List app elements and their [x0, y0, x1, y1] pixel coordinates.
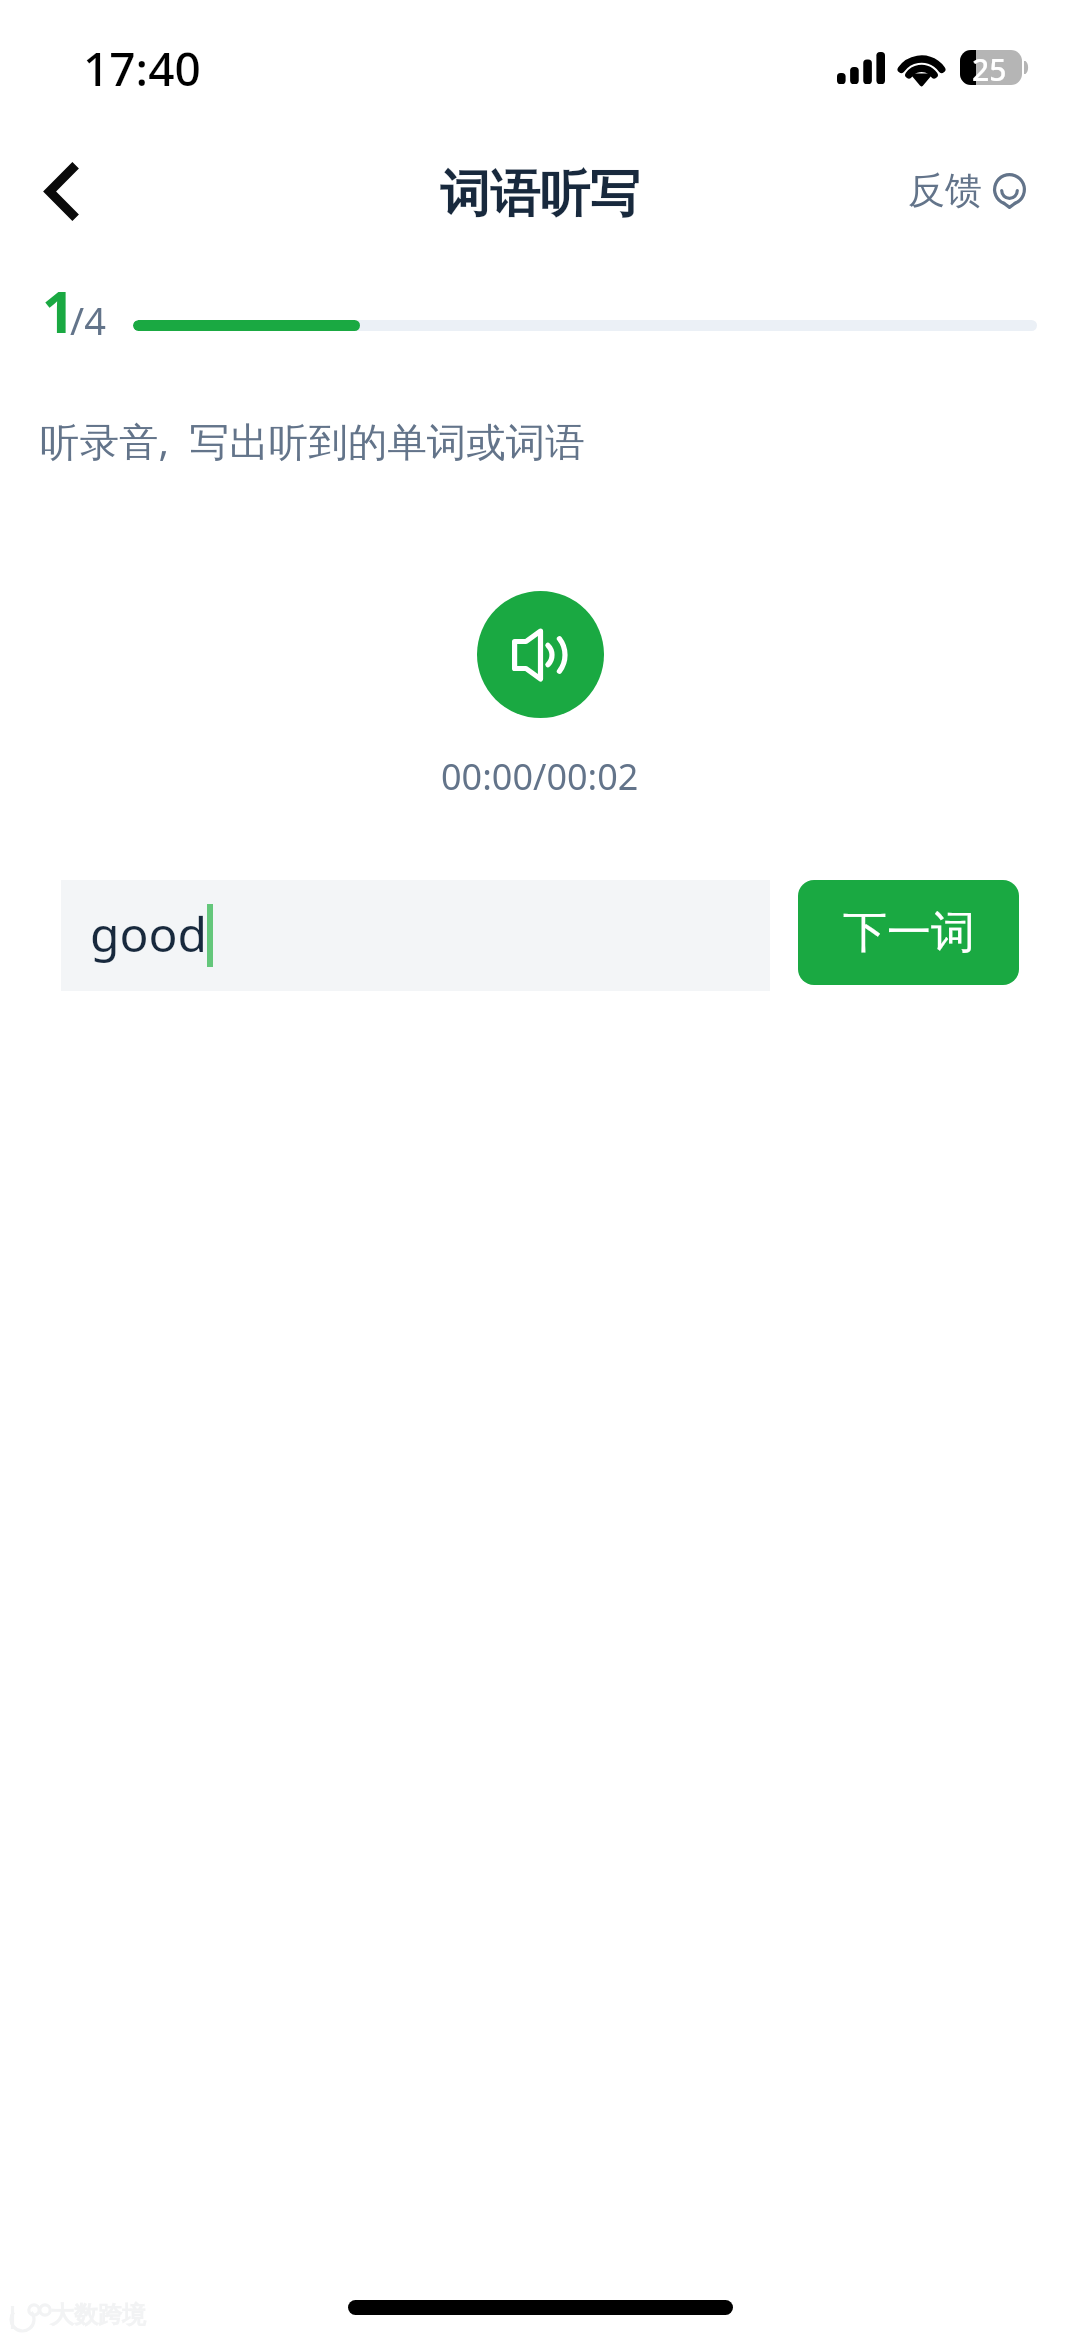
staticText: 1 — [42, 272, 75, 350]
staticText: 17:40 — [83, 37, 201, 100]
staticText: 词语听写 — [440, 163, 640, 226]
staticText: 大数跨境 — [50, 2300, 146, 2330]
button[interactable]: 反馈 — [908, 155, 1026, 227]
staticText: /4 — [70, 294, 106, 346]
staticText: good — [90, 901, 208, 966]
button[interactable]: Back — [15, 145, 107, 237]
staticText: 下一词 — [843, 905, 975, 960]
button[interactable]: 下一词 — [798, 880, 1019, 985]
staticText: 反馈 — [908, 167, 982, 214]
button[interactable]: good — [61, 880, 770, 991]
staticText: 25 — [972, 50, 1007, 84]
staticText: 00:00/00:02 — [441, 752, 639, 801]
button[interactable]: Play audio — [477, 591, 604, 718]
staticText: 听录音, 写出听到的单词或词语 — [40, 414, 585, 468]
